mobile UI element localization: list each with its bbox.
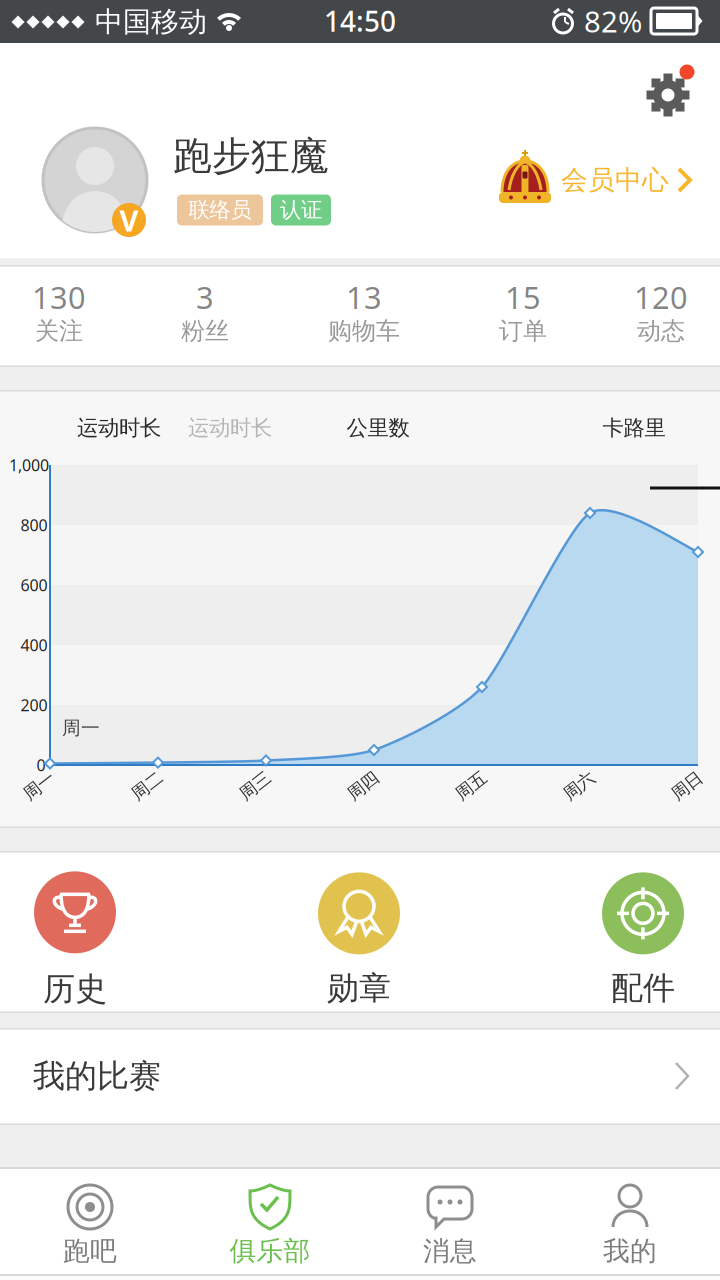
staticText: 周日 (670, 775, 704, 797)
staticText: 120 (634, 277, 688, 317)
staticText: 13 (346, 277, 382, 317)
staticText: 周四 (346, 775, 380, 797)
staticText: 600 (20, 574, 47, 596)
button[interactable]: 公里数 (346, 415, 409, 441)
button[interactable] (638, 65, 698, 125)
staticText: 勋章 (327, 968, 391, 1008)
button[interactable]: 联络员 (177, 194, 263, 225)
staticText: 周二 (130, 775, 164, 797)
staticText: 动态 (637, 316, 685, 346)
staticText: 周三 (238, 775, 272, 797)
staticText: 运动时长 (188, 415, 272, 441)
button[interactable]: 卡路里 (602, 415, 665, 441)
button[interactable]: 历史 (34, 871, 116, 1009)
button[interactable]: 13 (299, 265, 429, 367)
staticText: 0 (36, 754, 45, 776)
staticText: 粉丝 (181, 316, 229, 346)
staticText: 130 (32, 277, 86, 317)
button[interactable]: 130 (0, 265, 124, 367)
staticText: 周一 (22, 775, 56, 797)
staticText: 关注 (35, 316, 83, 346)
staticText: 订单 (499, 316, 547, 346)
button[interactable]: 运动时长 (188, 415, 272, 441)
staticText: 200 (20, 694, 47, 716)
staticText: 14:50 (324, 2, 396, 40)
staticText: 消息 (423, 1235, 477, 1267)
button[interactable]: 勋章 (318, 872, 400, 1008)
staticText: 俱乐部 (229, 1235, 310, 1267)
staticText: 15 (505, 277, 541, 317)
button[interactable]: 3 (140, 265, 270, 367)
button[interactable]: 我的 (540, 1167, 720, 1280)
button[interactable]: 俱乐部 (180, 1167, 360, 1280)
staticText: 购物车 (328, 316, 400, 346)
staticText: 会员中心 (561, 164, 669, 196)
staticText: 400 (20, 634, 47, 656)
staticText: 82% (584, 1, 642, 40)
staticText: 中国移动 (95, 5, 207, 39)
button[interactable]: 运动时长 (77, 415, 161, 441)
staticText: V (119, 200, 138, 239)
button[interactable]: 跑吧 (0, 1167, 180, 1280)
staticText: 3 (196, 277, 214, 317)
staticText: 1,000 (9, 454, 49, 476)
button[interactable]: 会员中心 (497, 150, 693, 210)
staticText: 配件 (611, 968, 675, 1008)
staticText: 公里数 (346, 415, 409, 441)
staticText: 卡路里 (602, 415, 665, 441)
staticText: 跑步狂魔 (173, 132, 329, 180)
button[interactable]: 配件 (602, 872, 684, 1008)
staticText: 800 (20, 514, 47, 536)
button[interactable]: 我的比赛 (0, 1028, 720, 1125)
staticText: 历史 (43, 969, 107, 1009)
staticText: 周五 (454, 775, 488, 797)
staticText: 联络员 (188, 197, 251, 223)
button[interactable]: 120 (596, 265, 720, 367)
staticText: 运动时长 (77, 415, 161, 441)
staticText: 周一 (62, 716, 100, 739)
staticText: 认证 (280, 197, 322, 223)
staticText: 我的 (603, 1235, 657, 1267)
staticText: 我的比赛 (33, 1056, 161, 1096)
button[interactable]: 消息 (360, 1167, 540, 1280)
button[interactable]: 认证 (271, 194, 331, 225)
staticText: 周六 (562, 775, 596, 797)
button[interactable]: 15 (458, 265, 588, 367)
staticText: 跑吧 (63, 1235, 117, 1267)
